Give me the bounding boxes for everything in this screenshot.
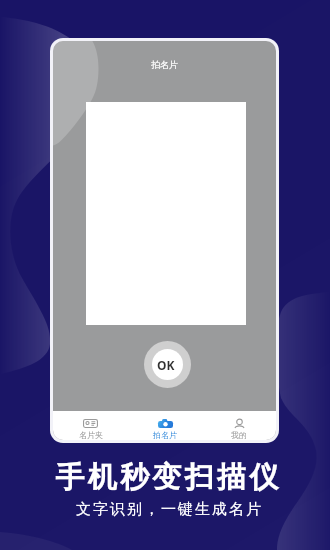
button[interactable]: OK xyxy=(144,341,191,388)
button[interactable]: 拍名片 xyxy=(128,411,202,440)
other: 名片夹 xyxy=(83,419,98,428)
other: 拍名片 xyxy=(158,419,173,428)
staticText: 文字识别，一键生成名片 xyxy=(75,500,262,519)
other: 我的 xyxy=(232,419,247,428)
staticText: 拍名片 xyxy=(151,59,178,70)
staticText: 拍名片 xyxy=(153,430,177,440)
button[interactable]: 名片夹 xyxy=(53,411,128,440)
staticText: 我的 xyxy=(231,430,247,440)
staticText: OK xyxy=(157,357,175,373)
staticText: 手机秒变扫描仪 xyxy=(55,459,282,496)
button[interactable]: 我的 xyxy=(202,411,276,440)
staticText: 名片夹 xyxy=(79,430,103,440)
